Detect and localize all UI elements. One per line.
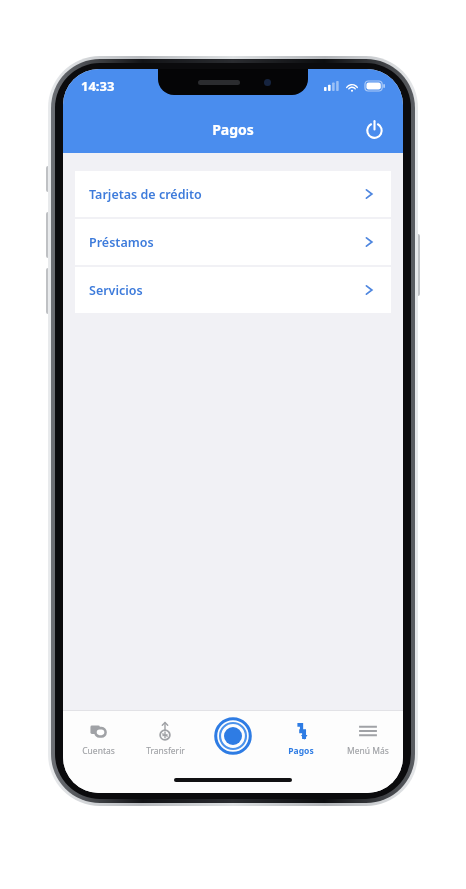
staticText: Servicios (89, 282, 143, 299)
button[interactable]: Cuentas (65, 711, 131, 771)
staticText: 14:33 (81, 77, 115, 95)
staticText: Tarjetas de crédito (89, 186, 202, 203)
button[interactable]: Inicio (200, 711, 266, 771)
button[interactable]: Cerrar sesión (357, 112, 391, 146)
staticText: Cuentas (82, 745, 115, 757)
button[interactable]: Tarjetas de crédito (75, 171, 391, 217)
button[interactable]: Pagos (268, 711, 334, 771)
staticText: Préstamos (89, 234, 154, 251)
staticText: Transferir (146, 745, 185, 757)
button[interactable]: Menú Más (335, 711, 401, 771)
button[interactable]: Servicios (75, 267, 391, 313)
button[interactable]: Transferir (132, 711, 198, 771)
staticText: Menú Más (347, 745, 389, 757)
button[interactable]: Préstamos (75, 219, 391, 265)
staticText: Pagos (212, 120, 254, 139)
staticText: Pagos (288, 745, 314, 757)
